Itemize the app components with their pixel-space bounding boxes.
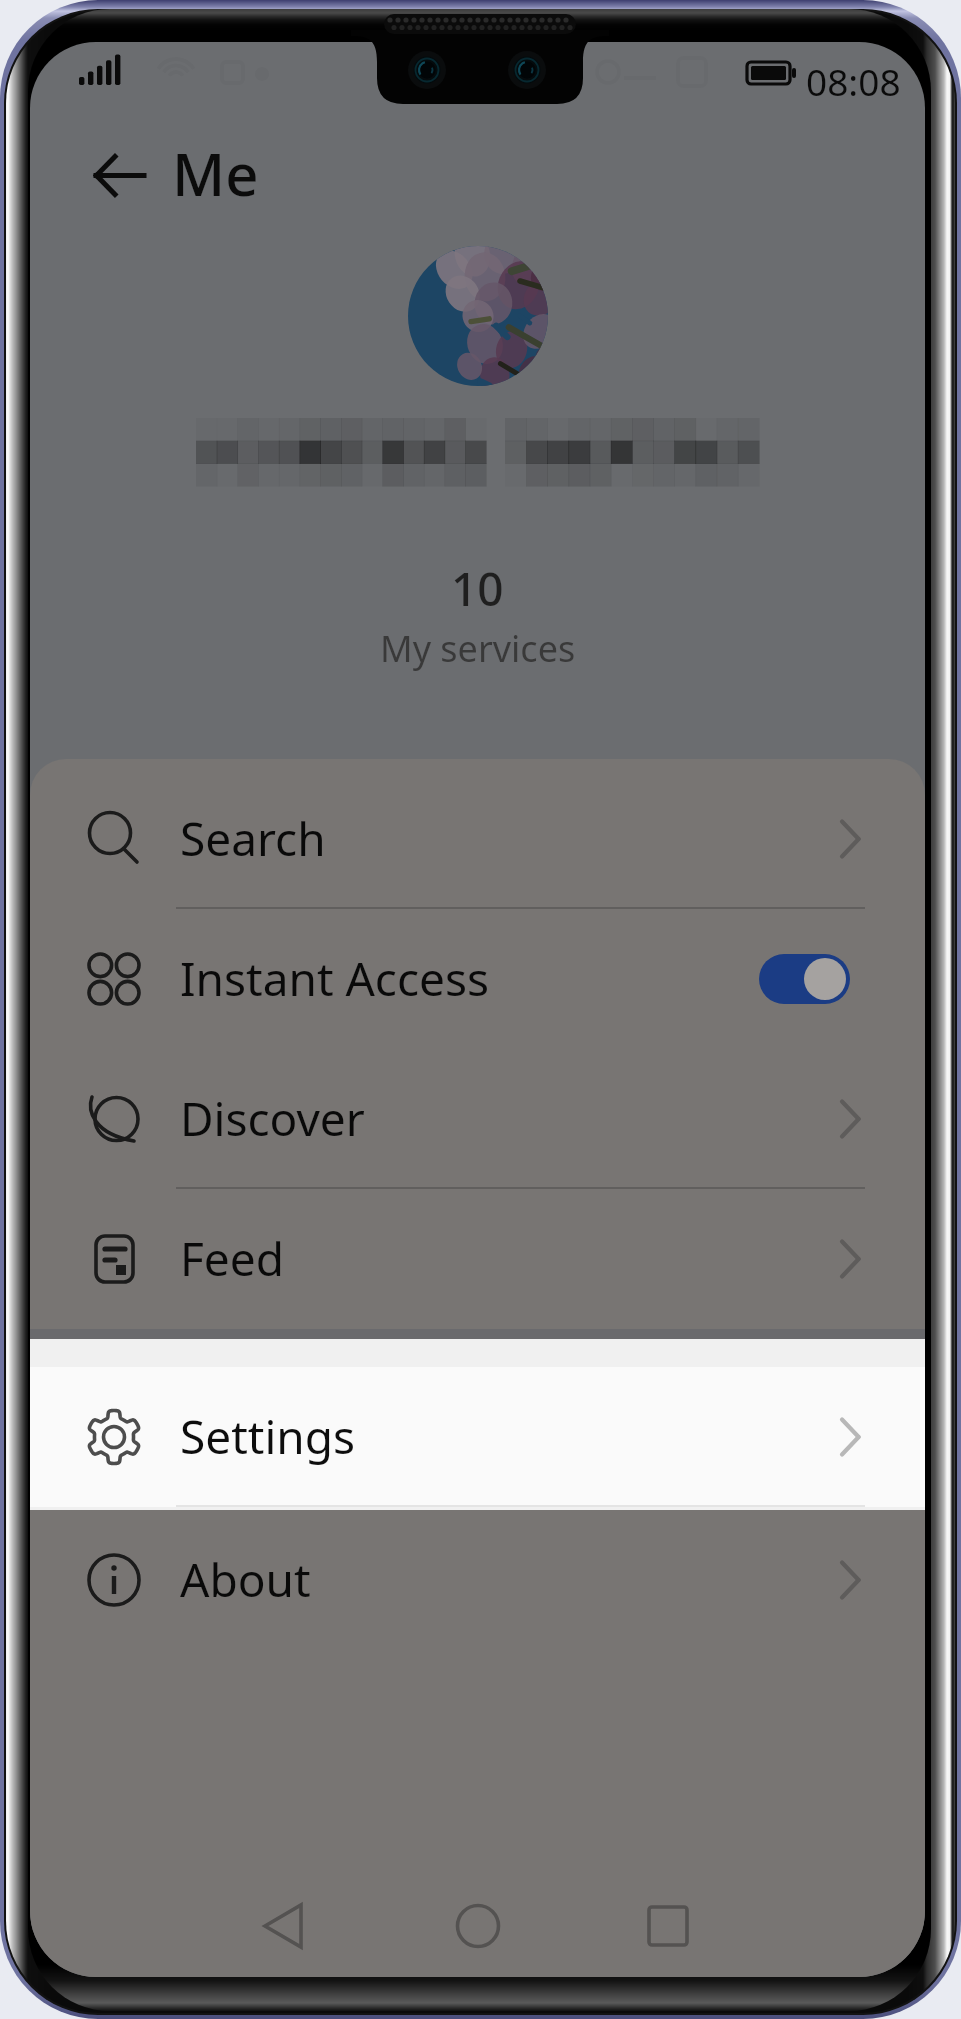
staticText: Settings xyxy=(180,1405,356,1468)
staticText: Discover xyxy=(180,1087,365,1150)
button[interactable]: About xyxy=(30,1510,925,1650)
button[interactable]: Recents xyxy=(625,1883,711,1969)
button[interactable]: Discover xyxy=(30,1049,925,1189)
button[interactable]: Back xyxy=(241,1883,327,1969)
button[interactable]: Search xyxy=(30,769,925,909)
staticText: Search xyxy=(180,807,326,870)
button[interactable]: Home xyxy=(435,1883,521,1969)
staticText: My services xyxy=(380,624,576,673)
staticText: 08:08 xyxy=(806,56,901,105)
button[interactable]: Profile photo xyxy=(408,246,548,386)
staticText: Feed xyxy=(180,1227,285,1290)
staticText: About xyxy=(180,1548,311,1611)
button[interactable]: Settings xyxy=(30,1367,925,1507)
button[interactable]: Back xyxy=(80,135,160,215)
staticText: Me xyxy=(172,134,259,213)
button[interactable]: Instant Access toggle xyxy=(759,954,850,1004)
staticText: Instant Access xyxy=(180,947,490,1010)
button[interactable]: Instant Access xyxy=(30,909,925,1049)
button[interactable]: Feed xyxy=(30,1189,925,1329)
staticText: 10 xyxy=(451,557,504,620)
